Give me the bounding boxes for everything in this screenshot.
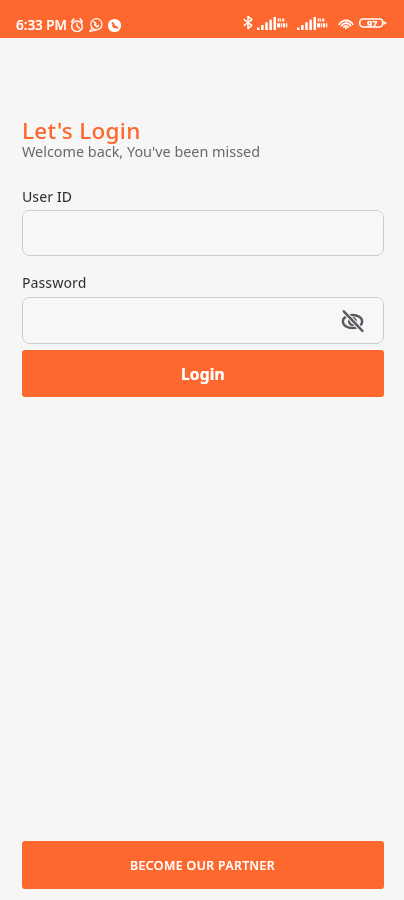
button[interactable]: BECOME OUR PARTNER [22, 841, 384, 889]
button[interactable]: User ID field [22, 210, 384, 256]
staticText: BECOME OUR PARTNER [130, 857, 276, 874]
button[interactable]: Show password [339, 308, 365, 334]
button[interactable]: Login [22, 350, 384, 397]
staticText: Let's Login [22, 115, 141, 146]
staticText: Password [22, 273, 87, 292]
button[interactable]: Password field [22, 297, 384, 344]
staticText: User ID [22, 187, 72, 206]
staticText: 6:33 PM [16, 16, 67, 34]
staticText: 97 [367, 17, 378, 29]
staticText: Welcome back, You've been missed [22, 142, 261, 162]
staticText: Login [181, 363, 225, 384]
